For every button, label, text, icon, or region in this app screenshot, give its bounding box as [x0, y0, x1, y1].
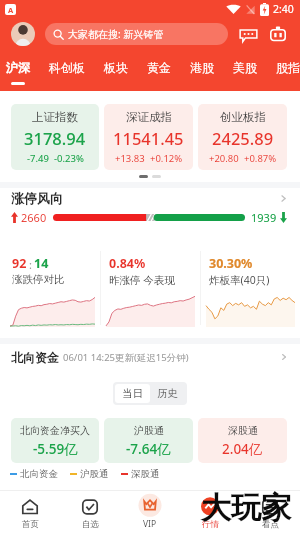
staticText: +0.12%: [150, 152, 183, 165]
staticText: 港股: [190, 60, 214, 75]
button[interactable]: Profile: [11, 22, 35, 46]
button[interactable]: 92: [0, 249, 100, 327]
staticText: -7.64亿: [126, 440, 171, 458]
button[interactable]: 上证指数: [11, 104, 99, 170]
staticText: 大家都在搜: 新兴铸管: [68, 27, 164, 41]
staticText: 2:40: [273, 2, 294, 16]
button[interactable]: 北向资金: [11, 345, 289, 369]
staticText: 深股通: [131, 468, 160, 480]
button[interactable]: 深证成指: [104, 104, 193, 170]
button[interactable]: 黄金: [147, 50, 171, 91]
button[interactable]: 板块: [104, 50, 128, 91]
staticText: VIP: [143, 518, 157, 530]
staticText: 股指: [276, 60, 300, 75]
button[interactable]: Messages: [239, 25, 258, 44]
button[interactable]: 大家都在搜: 新兴铸管: [45, 23, 228, 45]
staticText: -5.59亿: [33, 440, 78, 458]
staticText: 昨涨停 今表现: [109, 273, 175, 287]
staticText: 沪股通: [80, 468, 109, 480]
staticText: 大玩家: [201, 489, 291, 527]
button[interactable]: 科创板: [49, 50, 85, 91]
staticText: 沪股通: [134, 424, 164, 437]
button[interactable]: 股指: [276, 50, 300, 91]
staticText: 92: [12, 255, 27, 272]
button[interactable]: Assistant: [269, 25, 287, 43]
staticText: 3178.94: [24, 127, 86, 149]
staticText: 沪深: [6, 60, 30, 75]
button[interactable]: 30.30%: [201, 249, 300, 327]
button[interactable]: 自选: [60, 491, 120, 536]
staticText: 创业板指: [220, 110, 266, 124]
staticText: 0.84%: [109, 255, 146, 272]
staticText: A: [8, 5, 14, 15]
staticText: 2660: [21, 210, 47, 224]
staticText: 北向资金: [11, 350, 59, 365]
staticText: 黄金: [147, 60, 171, 75]
staticText: 30.30%: [209, 255, 253, 272]
staticText: +0.87%: [244, 152, 277, 165]
staticText: 2.04亿: [222, 440, 263, 458]
button[interactable]: 沪深: [6, 50, 30, 91]
button[interactable]: 当日: [115, 384, 150, 403]
staticText: 看点: [262, 519, 279, 530]
button[interactable]: 创业板指: [198, 104, 287, 170]
staticText: 北向资金净买入: [20, 424, 90, 437]
staticText: 06/01 14:25更新(延迟15分钟): [63, 351, 189, 364]
button[interactable]: 行情: [180, 491, 240, 536]
button[interactable]: 0.84%: [101, 249, 200, 327]
staticText: 涨跌停对比: [12, 273, 65, 286]
staticText: 炸板率(40只): [209, 273, 270, 287]
staticText: 行情: [202, 519, 219, 530]
staticText: -7.49: [27, 152, 49, 165]
button[interactable]: 沪股通: [104, 418, 193, 463]
staticText: 上证指数: [32, 110, 78, 124]
staticText: 14: [34, 255, 49, 272]
staticText: +20.80: [209, 152, 239, 165]
button[interactable]: 历史: [150, 384, 185, 403]
staticText: 深股通: [228, 424, 258, 437]
staticText: 美股: [233, 60, 257, 75]
button[interactable]: 北向资金净买入: [11, 418, 99, 463]
button[interactable]: 首页: [0, 491, 60, 536]
button[interactable]: 涨停风向: [11, 188, 289, 208]
button[interactable]: 深股通: [198, 418, 287, 463]
button[interactable]: VIP: [120, 491, 180, 536]
button[interactable]: 美股: [233, 50, 257, 91]
staticText: :: [29, 257, 32, 272]
staticText: +13.83: [115, 152, 145, 165]
button[interactable]: 港股: [190, 50, 214, 91]
staticText: 科创板: [49, 60, 85, 75]
button[interactable]: 看点: [240, 491, 300, 536]
staticText: 1939: [251, 210, 277, 224]
staticText: 当日: [122, 387, 143, 400]
staticText: 板块: [104, 60, 128, 75]
staticText: 涨停风向: [11, 190, 63, 206]
staticText: 自选: [82, 519, 99, 530]
staticText: 北向资金: [20, 468, 58, 480]
staticText: 深证成指: [126, 110, 172, 124]
staticText: 首页: [22, 519, 39, 530]
staticText: 11541.45: [113, 127, 184, 149]
staticText: -0.23%: [54, 152, 84, 165]
staticText: 历史: [157, 387, 178, 400]
staticText: 2425.89: [212, 127, 274, 149]
